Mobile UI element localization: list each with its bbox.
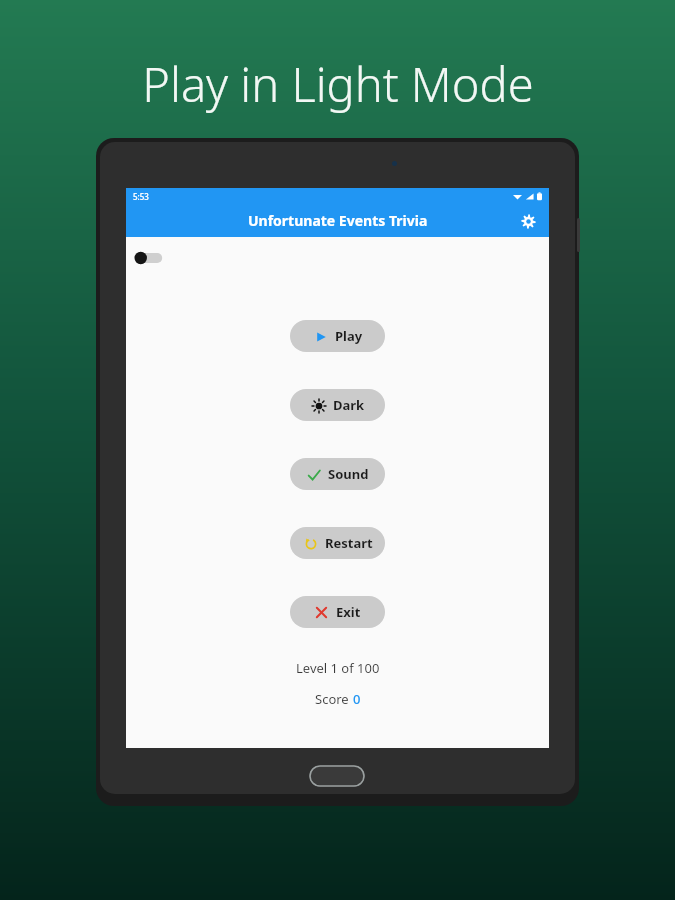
button[interactable]: Sound bbox=[290, 458, 385, 490]
staticText: Unfortunate Events Trivia bbox=[248, 211, 428, 230]
button[interactable]: Settings bbox=[517, 210, 539, 232]
staticText: Play bbox=[335, 327, 363, 345]
button[interactable]: Restart bbox=[290, 527, 385, 559]
staticText: Sound bbox=[328, 465, 369, 483]
staticText: Restart bbox=[325, 534, 373, 552]
staticText: Level 1 of 100 bbox=[296, 659, 380, 677]
staticText: Dark bbox=[333, 396, 365, 414]
staticText: 5:53 bbox=[133, 191, 149, 202]
staticText: Exit bbox=[336, 603, 361, 621]
staticText: Score bbox=[315, 690, 353, 708]
button[interactable]: Toggle theme bbox=[134, 250, 164, 266]
button[interactable]: Play bbox=[290, 320, 385, 352]
staticText: Play in Light Mode bbox=[142, 52, 534, 116]
button[interactable]: Exit bbox=[290, 596, 385, 628]
staticText: 0 bbox=[353, 690, 361, 708]
button[interactable]: Dark bbox=[290, 389, 385, 421]
